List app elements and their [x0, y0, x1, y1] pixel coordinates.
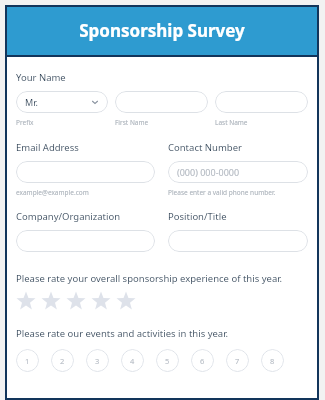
button[interactable]: 8 — [261, 349, 284, 372]
button[interactable]: 4 — [121, 349, 144, 372]
staticText: Please rate your overall sponsorship exp… — [16, 272, 283, 285]
button[interactable] — [215, 91, 308, 113]
staticText: Company/Organization — [16, 210, 121, 223]
button[interactable]: 6 — [191, 349, 214, 372]
staticText: 7 — [235, 356, 240, 366]
staticText: 4 — [130, 356, 135, 366]
button[interactable]: 3 — [86, 349, 109, 372]
button[interactable]: 7 — [226, 349, 249, 372]
staticText: example@example.com — [16, 188, 89, 197]
staticText: (000) 000-0000 — [177, 166, 240, 178]
staticText: 6 — [200, 356, 205, 366]
staticText: Mr. — [25, 96, 38, 108]
staticText: Sponsorship Survey — [79, 19, 245, 42]
button[interactable] — [168, 230, 308, 252]
staticText: 1 — [25, 356, 30, 366]
button[interactable]: (000) 000-0000 — [168, 161, 308, 183]
button[interactable]: 5 — [156, 349, 179, 372]
button[interactable] — [16, 230, 155, 252]
button[interactable]: Mr. — [16, 91, 108, 113]
staticText: First Name — [115, 118, 208, 127]
staticText: Email Address — [16, 141, 79, 154]
staticText: 5 — [165, 356, 170, 366]
button[interactable]: 2 — [51, 349, 74, 372]
staticText: 8 — [270, 356, 275, 366]
staticText: Your Name — [16, 71, 66, 84]
staticText: Position/Title — [168, 210, 227, 223]
button[interactable]: Rate star — [66, 291, 86, 311]
staticText: Last Name — [215, 118, 308, 127]
staticText: Please enter a valid phone number. — [168, 188, 276, 197]
staticText: Please rate our events and activities in… — [16, 327, 229, 340]
button[interactable]: Rate star — [16, 291, 36, 311]
button[interactable] — [16, 161, 155, 183]
button[interactable]: Rate star — [91, 291, 111, 311]
button[interactable]: Rate star — [116, 291, 136, 311]
staticText: Prefix — [16, 118, 108, 127]
staticText: 2 — [60, 356, 65, 366]
staticText: 3 — [95, 356, 100, 366]
button[interactable]: Rate star — [41, 291, 61, 311]
button[interactable] — [115, 91, 208, 113]
staticText: Contact Number — [168, 141, 242, 154]
button[interactable]: 1 — [16, 349, 39, 372]
